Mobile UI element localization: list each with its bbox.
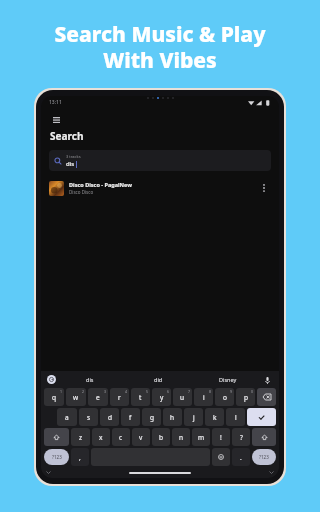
staticText: Disco Disco - PagalNew [69, 181, 132, 188]
staticText: g [150, 413, 154, 422]
button[interactable]: r [110, 388, 129, 406]
button[interactable]: t [131, 388, 150, 406]
staticText: j [193, 413, 195, 422]
staticText: n [179, 433, 184, 442]
button[interactable]: s [79, 408, 98, 426]
staticText: y [160, 393, 164, 402]
button[interactable]: q [44, 388, 64, 406]
button[interactable]: Enter [247, 408, 276, 426]
staticText: dis [66, 160, 75, 168]
staticText: 5 [146, 389, 149, 394]
button[interactable]: v [132, 428, 150, 446]
button[interactable]: More options [257, 181, 271, 195]
button[interactable]: , [71, 448, 89, 466]
staticText: Disco Disco [69, 189, 94, 195]
button[interactable]: ?123 [252, 449, 276, 465]
staticText: 4 [125, 389, 128, 394]
staticText: q [52, 393, 56, 402]
button[interactable]: e [88, 388, 108, 406]
staticText: 13:11 [49, 99, 62, 106]
button[interactable]: Backspace [257, 388, 276, 406]
staticText: u [180, 393, 185, 402]
button[interactable]: p [236, 388, 255, 406]
staticText: 2 [82, 389, 85, 394]
button[interactable]: ! [212, 428, 230, 446]
staticText: k [213, 413, 217, 422]
staticText: Search [50, 129, 84, 143]
button[interactable]: w [66, 388, 86, 406]
staticText: x [99, 433, 103, 442]
button[interactable]: Emoji [212, 448, 230, 466]
staticText: Search Music & Play With Vibes [54, 20, 266, 74]
staticText: o [223, 393, 227, 402]
button[interactable]: dis [56, 373, 124, 386]
button[interactable]: u [173, 388, 192, 406]
button[interactable]: did [124, 373, 193, 386]
staticText: z [79, 433, 83, 442]
button[interactable]: j [184, 408, 203, 426]
button[interactable]: 3 tracks [49, 150, 271, 171]
staticText: dis [86, 376, 94, 383]
staticText: w [73, 393, 79, 402]
button[interactable]: h [163, 408, 182, 426]
staticText: d [108, 413, 112, 422]
staticText: 6 [167, 389, 170, 394]
button[interactable]: ?123 [44, 449, 69, 465]
staticText: 8 [209, 389, 212, 394]
button[interactable]: l [226, 408, 245, 426]
button[interactable]: Disco Disco - PagalNew [41, 177, 279, 199]
staticText: ?123 [259, 454, 269, 460]
button[interactable]: a [57, 408, 77, 426]
staticText: 9 [230, 389, 233, 394]
button[interactable]: x [92, 428, 110, 446]
button[interactable]: Menu [49, 113, 63, 127]
staticText: 3 tracks [66, 154, 81, 159]
staticText: f [129, 413, 132, 422]
button[interactable]: Shift [252, 428, 276, 446]
button[interactable]: Shift [44, 428, 69, 446]
staticText: t [139, 393, 142, 402]
button[interactable]: o [215, 388, 234, 406]
button[interactable]: . [232, 448, 250, 466]
staticText: p [244, 393, 248, 402]
button[interactable]: ? [232, 428, 250, 446]
staticText: . [240, 453, 242, 462]
button[interactable]: y [152, 388, 171, 406]
staticText: did [154, 376, 163, 383]
staticText: 3 [104, 389, 107, 394]
button[interactable]: Assistant [47, 375, 56, 384]
staticText: i [203, 393, 205, 402]
button[interactable]: c [112, 428, 130, 446]
staticText: e [96, 393, 100, 402]
staticText: b [159, 433, 163, 442]
staticText: 7 [188, 389, 191, 394]
staticText: v [139, 433, 143, 442]
staticText: , [79, 453, 81, 462]
staticText: h [170, 413, 175, 422]
button[interactable]: n [172, 428, 190, 446]
button[interactable]: Disney [193, 373, 262, 386]
staticText: l [235, 413, 237, 422]
staticText: r [118, 393, 121, 402]
button[interactable]: z [71, 428, 90, 446]
staticText: ! [220, 433, 222, 442]
staticText: Disney [219, 376, 237, 383]
staticText: ?123 [52, 454, 62, 460]
button[interactable]: b [152, 428, 170, 446]
button[interactable]: f [121, 408, 140, 426]
staticText: m [198, 433, 205, 442]
button[interactable]: m [192, 428, 210, 446]
staticText: a [65, 413, 69, 422]
button[interactable]: Voice input [262, 375, 272, 385]
button[interactable]: d [100, 408, 119, 426]
button[interactable]: k [205, 408, 224, 426]
staticText: s [87, 413, 91, 422]
staticText: c [119, 433, 123, 442]
button[interactable]: i [194, 388, 213, 406]
staticText: ? [240, 433, 243, 442]
button[interactable]: g [142, 408, 161, 426]
staticText: 1 [60, 389, 63, 394]
staticText: 0 [251, 389, 254, 394]
